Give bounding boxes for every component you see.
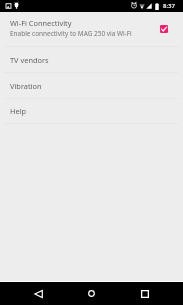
button[interactable]: Wi-Fi Connectivity enabled — [160, 25, 168, 33]
staticText: 8:37 — [163, 1, 176, 9]
button[interactable]: Back — [14, 282, 62, 305]
staticText: Wi-Fi Connectivity — [10, 18, 72, 28]
button[interactable]: Help — [0, 99, 183, 123]
button[interactable]: TV vendors — [0, 47, 183, 72]
staticText: Enable connectivity to MAG 250 via Wi-Fi — [10, 29, 132, 38]
button[interactable]: Recent apps — [121, 282, 169, 305]
button[interactable]: Home — [67, 282, 115, 305]
button[interactable]: Wi-Fi Connectivity — [0, 12, 183, 46]
staticText: Help — [10, 106, 27, 116]
button[interactable]: Vibration — [0, 73, 183, 98]
staticText: Vibration — [10, 81, 42, 91]
staticText: TV vendors — [10, 55, 49, 65]
